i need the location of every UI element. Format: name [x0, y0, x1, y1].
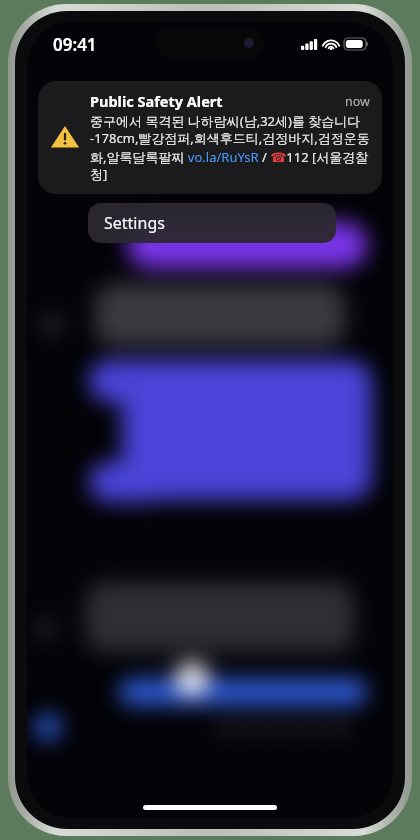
staticText: now [345, 93, 370, 110]
button[interactable]: Public Safety Alert [38, 81, 382, 194]
staticText: 09:41 [53, 33, 97, 56]
staticText: Settings [104, 212, 165, 234]
staticText: 중구에서 목격된 나하람씨(남,32세)를 찾습니다 -178cm,빨강점퍼,회… [90, 112, 370, 183]
button[interactable]: Settings [88, 203, 336, 243]
staticText: Public Safety Alert [90, 91, 345, 111]
